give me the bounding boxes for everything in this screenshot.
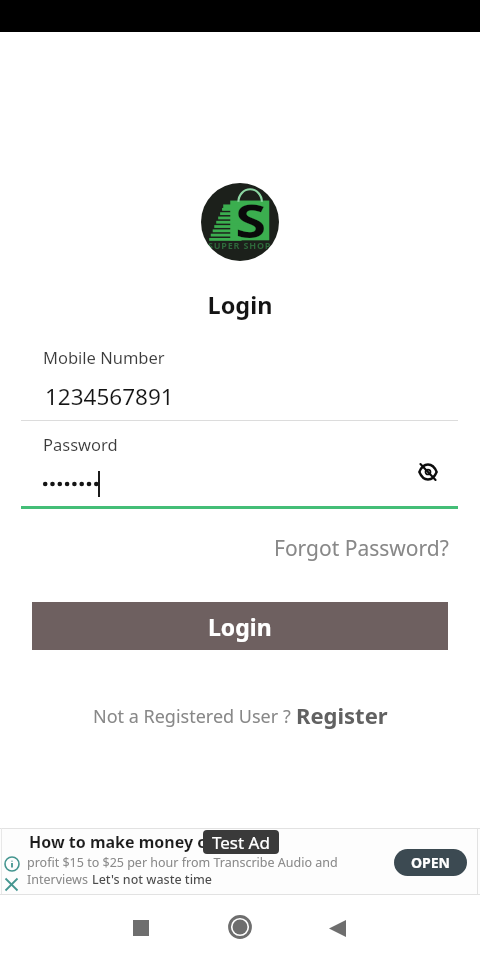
staticText: OPEN (411, 853, 450, 872)
staticText: Not a Registered User ? (93, 704, 296, 729)
staticText: Login (208, 611, 272, 642)
button[interactable]: Home (216, 903, 264, 951)
staticText: Password (43, 433, 118, 455)
button[interactable]: Password (21, 427, 458, 509)
button[interactable]: Login (32, 602, 448, 650)
staticText: SUPER SHOP (208, 239, 272, 251)
staticText: Interviews (27, 871, 92, 888)
button[interactable]: Mobile Number (21, 340, 458, 421)
staticText: Login (0, 289, 480, 321)
staticText: How to make money online (29, 831, 248, 853)
staticText: 1234567891 (45, 381, 174, 412)
staticText: S (235, 189, 267, 252)
button[interactable]: Back (313, 904, 361, 952)
staticText: Test Ad (212, 831, 270, 854)
staticText: Let's not waste time (92, 871, 213, 888)
button[interactable]: Register (296, 699, 388, 729)
button[interactable]: Recent apps (117, 904, 165, 952)
staticText: Mobile Number (43, 346, 165, 368)
staticText: Forgot Password? (274, 534, 449, 563)
button[interactable]: Toggle password visibility (411, 455, 445, 489)
button[interactable]: Forgot Password? (268, 528, 455, 569)
button[interactable]: OPEN (394, 849, 467, 876)
staticText: profit $15 to $25 per hour from Transcri… (27, 854, 338, 871)
